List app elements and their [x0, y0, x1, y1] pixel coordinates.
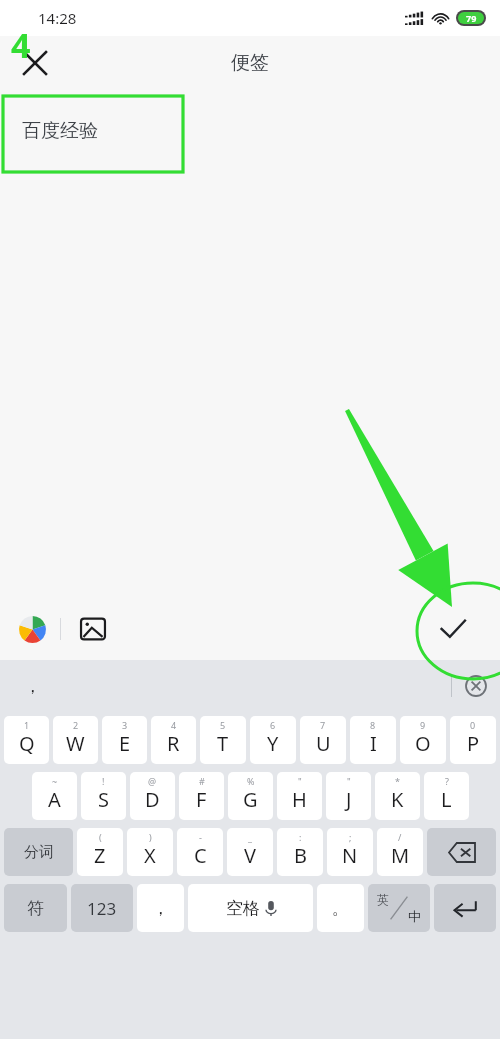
- staticText: G: [243, 786, 258, 813]
- staticText: 符: [27, 898, 44, 919]
- staticText: 空格: [226, 898, 260, 919]
- staticText: 79: [466, 12, 477, 24]
- staticText: 1: [24, 719, 30, 731]
- button[interactable]: @: [130, 772, 175, 820]
- staticText: Z: [94, 842, 106, 869]
- staticText: 。: [332, 898, 349, 919]
- staticText: A: [48, 786, 61, 813]
- button[interactable]: 8: [350, 716, 396, 764]
- button[interactable]: 6: [250, 716, 296, 764]
- button[interactable]: ": [277, 772, 322, 820]
- staticText: 英: [377, 892, 389, 907]
- button[interactable]: :: [277, 828, 323, 876]
- staticText: K: [391, 786, 404, 813]
- button[interactable]: 符: [4, 884, 67, 932]
- button[interactable]: 英: [368, 884, 430, 932]
- staticText: ": [298, 775, 302, 787]
- staticText: C: [194, 842, 207, 869]
- button[interactable]: 5: [200, 716, 246, 764]
- staticText: H: [292, 786, 307, 813]
- staticText: 5: [220, 719, 226, 731]
- staticText: !: [102, 775, 105, 787]
- button[interactable]: *: [375, 772, 420, 820]
- staticText: 2: [73, 719, 79, 731]
- staticText: ~: [52, 775, 58, 787]
- staticText: %: [247, 775, 255, 787]
- staticText: I: [370, 730, 377, 757]
- staticText: 6: [270, 719, 276, 731]
- staticText: B: [294, 842, 307, 869]
- button[interactable]: 7: [300, 716, 346, 764]
- button[interactable]: 0: [450, 716, 496, 764]
- staticText: J: [346, 786, 352, 813]
- staticText: @: [148, 775, 157, 787]
- staticText: D: [145, 786, 160, 813]
- staticText: ): [149, 831, 152, 843]
- button[interactable]: _: [227, 828, 273, 876]
- button[interactable]: 1: [4, 716, 49, 764]
- staticText: 9: [420, 719, 426, 731]
- button[interactable]: 。: [317, 884, 364, 932]
- staticText: *: [395, 775, 400, 787]
- staticText: 0: [470, 719, 476, 731]
- staticText: L: [441, 786, 452, 813]
- button[interactable]: 2: [53, 716, 98, 764]
- button[interactable]: !: [81, 772, 126, 820]
- button[interactable]: -: [177, 828, 223, 876]
- button[interactable]: Backspace: [427, 828, 496, 876]
- staticText: N: [342, 842, 358, 869]
- staticText: U: [316, 730, 331, 757]
- button[interactable]: 123: [71, 884, 133, 932]
- staticText: _: [248, 831, 252, 843]
- staticText: R: [167, 730, 180, 757]
- staticText: V: [244, 842, 256, 869]
- button[interactable]: 4: [151, 716, 196, 764]
- button[interactable]: Color: [10, 607, 54, 651]
- button[interactable]: 空格: [188, 884, 313, 932]
- button[interactable]: 9: [400, 716, 446, 764]
- button[interactable]: Insert image: [71, 607, 115, 651]
- staticText: 123: [87, 897, 117, 920]
- staticText: O: [415, 730, 431, 757]
- button[interactable]: %: [228, 772, 273, 820]
- button[interactable]: ": [326, 772, 371, 820]
- button[interactable]: ?: [424, 772, 469, 820]
- staticText: ;: [349, 831, 352, 843]
- staticText: S: [98, 786, 109, 813]
- staticText: ": [347, 775, 351, 787]
- button[interactable]: (: [77, 828, 123, 876]
- button[interactable]: 分词: [4, 828, 73, 876]
- staticText: 4: [11, 22, 31, 68]
- staticText: 百度经验: [22, 119, 98, 143]
- button[interactable]: Hide keyboard: [452, 662, 500, 710]
- staticText: (: [99, 831, 102, 843]
- staticText: ?: [445, 775, 449, 787]
- staticText: 4: [171, 719, 177, 731]
- staticText: 分词: [24, 843, 54, 862]
- staticText: Y: [267, 730, 279, 757]
- button[interactable]: Close: [14, 42, 56, 84]
- button[interactable]: ;: [327, 828, 373, 876]
- staticText: F: [196, 786, 207, 813]
- staticText: 3: [122, 719, 128, 731]
- staticText: W: [66, 730, 85, 757]
- staticText: -: [199, 831, 202, 843]
- staticText: 8: [370, 719, 376, 731]
- staticText: 便签: [231, 51, 269, 75]
- staticText: P: [467, 730, 480, 757]
- button[interactable]: #: [179, 772, 224, 820]
- button[interactable]: ): [127, 828, 173, 876]
- staticText: Q: [19, 730, 35, 757]
- staticText: :: [299, 831, 302, 843]
- button[interactable]: 3: [102, 716, 147, 764]
- staticText: E: [119, 730, 131, 757]
- button[interactable]: ，: [137, 884, 184, 932]
- button[interactable]: Enter: [434, 884, 496, 932]
- button[interactable]: Done: [428, 604, 478, 654]
- staticText: X: [144, 842, 156, 869]
- staticText: #: [199, 775, 205, 787]
- button[interactable]: /: [377, 828, 423, 876]
- button[interactable]: ~: [32, 772, 77, 820]
- staticText: 14:28: [38, 8, 77, 28]
- staticText: 7: [320, 719, 326, 731]
